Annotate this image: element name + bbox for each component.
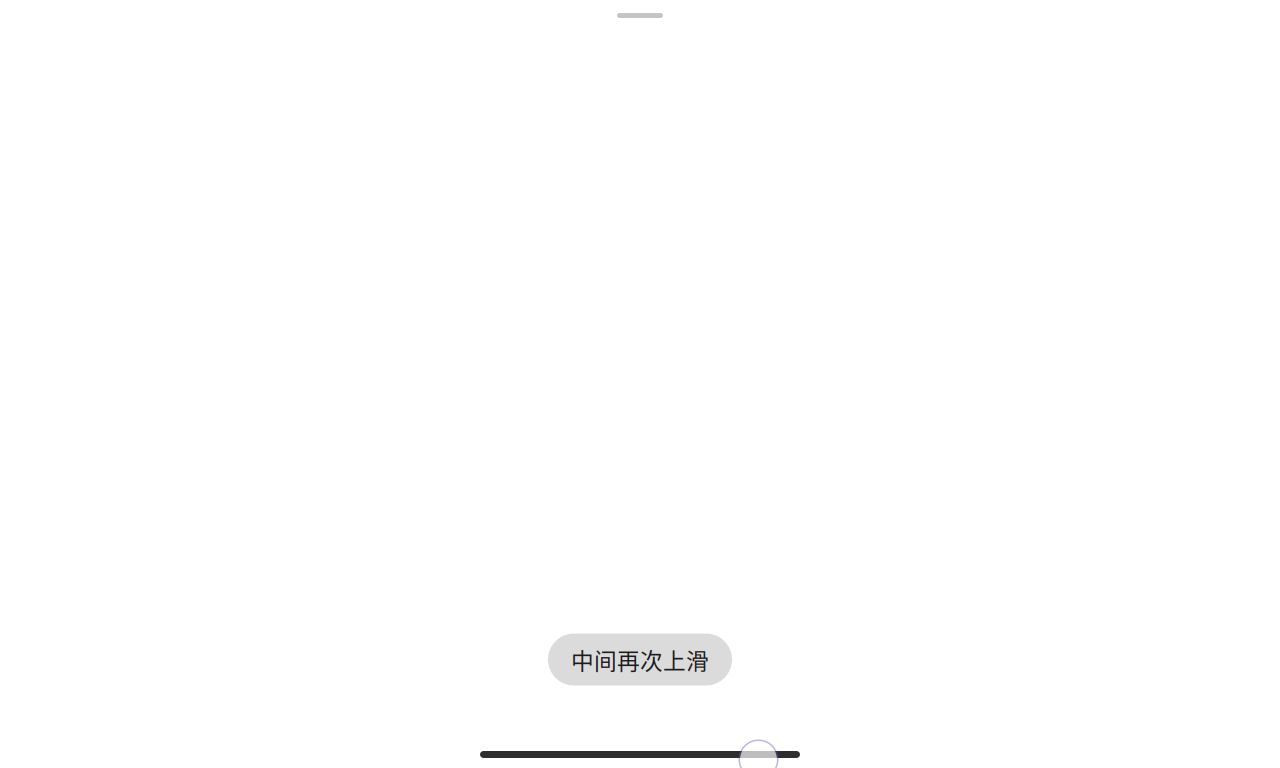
staticText: 中间再次上滑 (571, 643, 709, 676)
button[interactable]: 中间再次上滑 (548, 633, 732, 685)
button[interactable]: Drag to dismiss (609, 5, 671, 26)
